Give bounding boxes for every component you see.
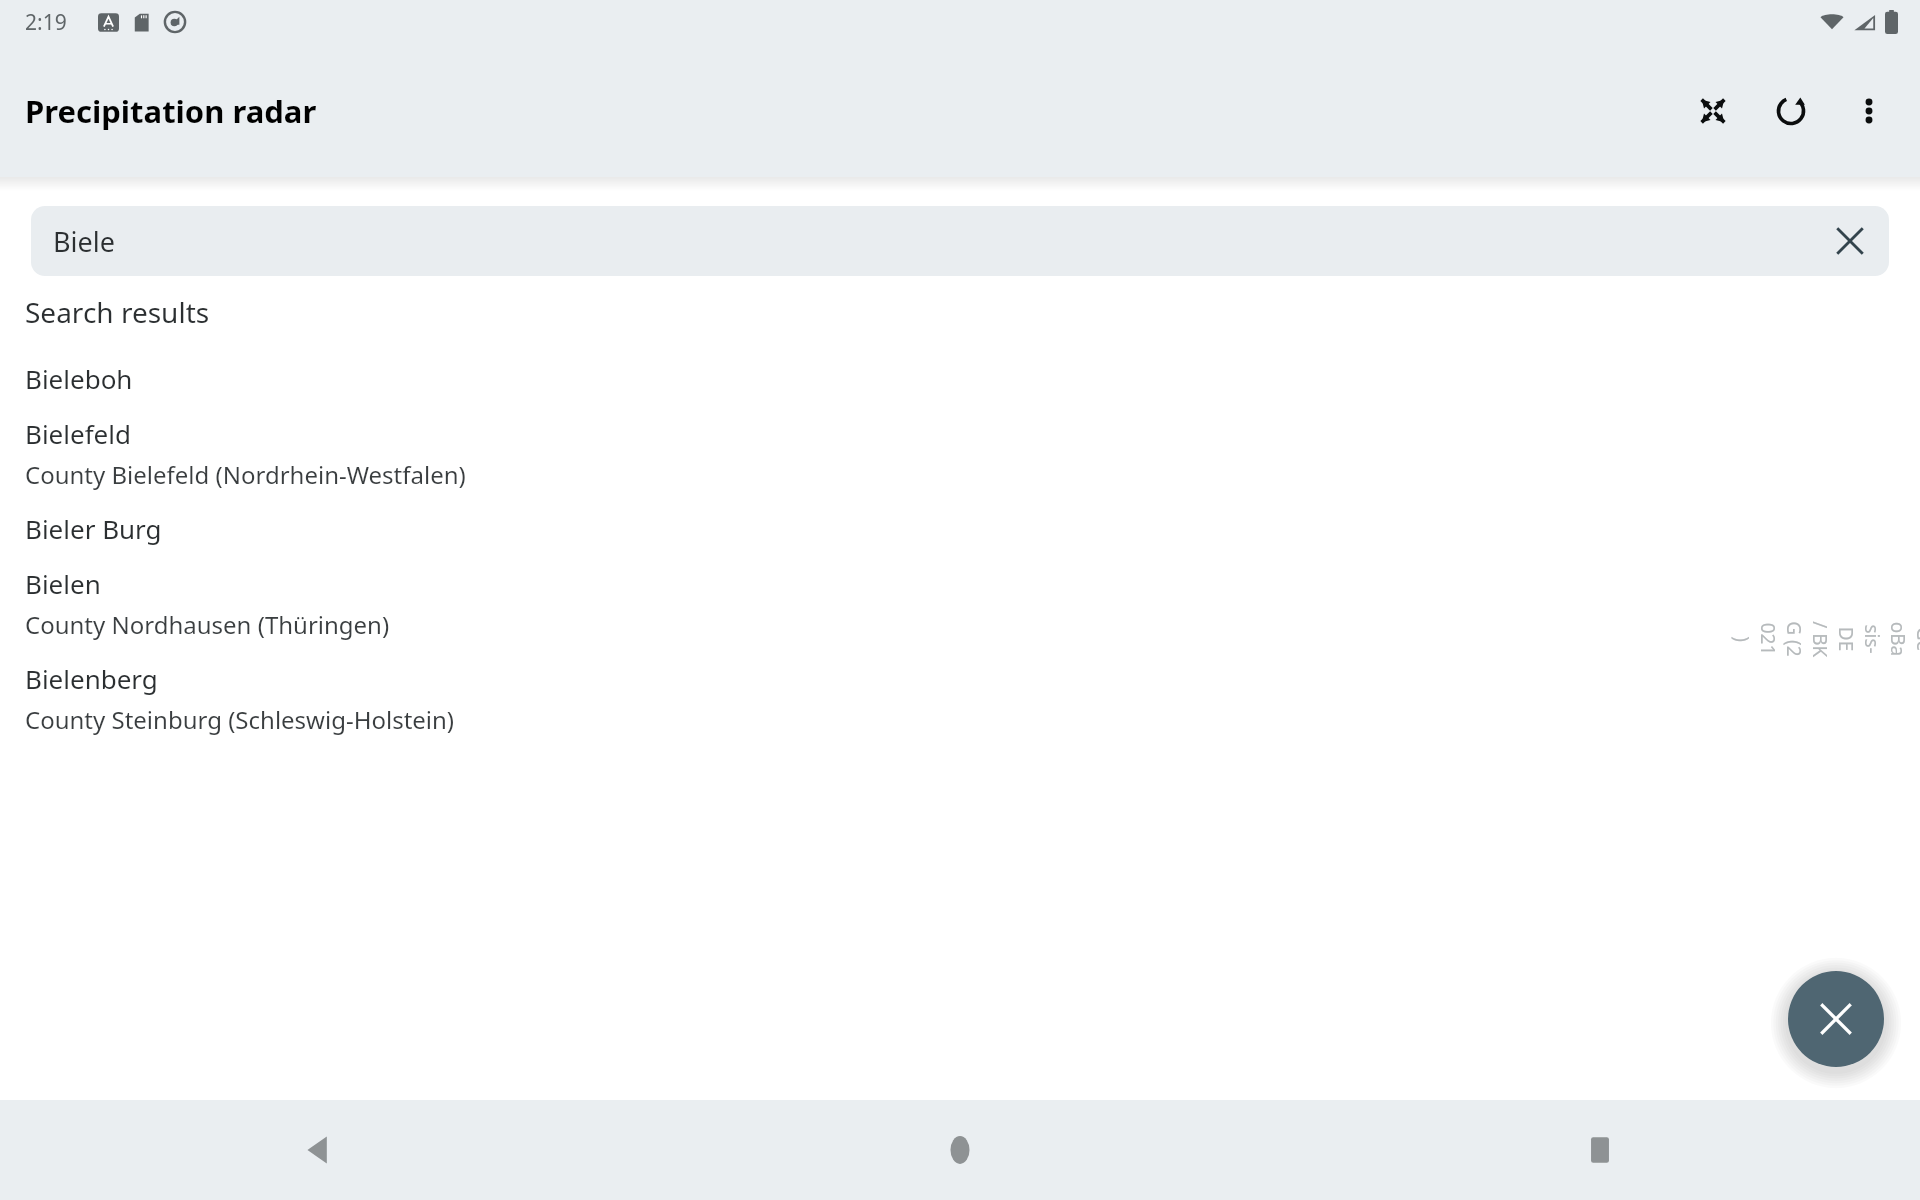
button[interactable]: More options bbox=[1830, 72, 1908, 150]
staticText: Biele bbox=[53, 223, 1819, 260]
button[interactable]: Clear search bbox=[1819, 210, 1881, 272]
button[interactable]: Refresh bbox=[1752, 72, 1830, 150]
button[interactable]: Recent apps bbox=[1562, 1112, 1638, 1188]
button[interactable]: Fullscreen bbox=[1674, 72, 1752, 150]
staticText: Search results bbox=[25, 293, 210, 331]
staticText: Bielefeld bbox=[25, 416, 131, 451]
button[interactable]: Biele bbox=[31, 206, 1889, 276]
staticText: Bieler Burg bbox=[25, 511, 162, 546]
button[interactable]: Bielenberg bbox=[0, 651, 1920, 746]
button[interactable]: Bieler Burg bbox=[0, 501, 1920, 556]
button[interactable]: Bieleboh bbox=[0, 351, 1920, 406]
button[interactable]: Back bbox=[282, 1112, 358, 1188]
staticText: Bielenberg bbox=[25, 661, 158, 696]
staticText: Bielen bbox=[25, 566, 101, 601]
staticText: County Steinburg (Schleswig-Holstein) bbox=[25, 703, 455, 736]
staticText: 2:19 bbox=[25, 8, 67, 37]
button[interactable]: Bielen bbox=[0, 556, 1920, 651]
staticText: Data basis: © GeoBasis-DE / BKG (2021) bbox=[1729, 621, 1920, 657]
staticText: Bieleboh bbox=[25, 361, 133, 396]
button[interactable]: Bielefeld bbox=[0, 406, 1920, 501]
button[interactable]: Home bbox=[922, 1112, 998, 1188]
staticText: County Bielefeld (Nordrhein-Westfalen) bbox=[25, 458, 466, 491]
staticText: County Nordhausen (Thüringen) bbox=[25, 608, 390, 641]
button[interactable]: Close search bbox=[1788, 971, 1884, 1067]
staticText: Precipitation radar bbox=[25, 90, 317, 132]
